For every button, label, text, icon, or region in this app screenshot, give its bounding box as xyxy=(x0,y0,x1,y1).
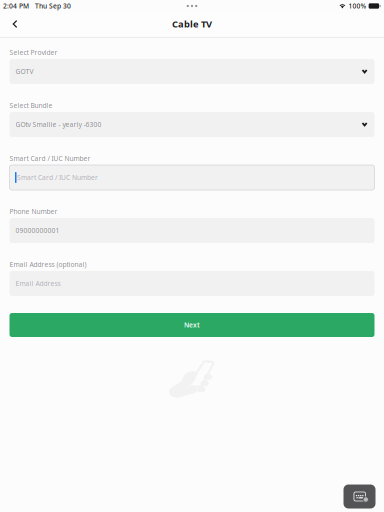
staticText: 100% xyxy=(348,2,366,10)
staticText: Cable TV xyxy=(172,18,212,30)
staticText: Smart Card / IUC Number xyxy=(17,173,98,182)
staticText: Email Address xyxy=(15,279,60,288)
staticText: GOTV xyxy=(15,67,33,76)
staticText: Select Bundle xyxy=(9,101,52,110)
staticText: 2:04 PM xyxy=(3,2,29,10)
button[interactable]: GOTV xyxy=(9,59,374,84)
button[interactable]: Next xyxy=(9,313,374,337)
staticText: Phone Number xyxy=(9,207,57,216)
button[interactable]: GOtv Smallie - yearly -6300 xyxy=(9,112,374,137)
staticText: Select Provider xyxy=(9,48,57,57)
button[interactable]: Hide keyboard xyxy=(343,484,375,508)
staticText: Smart Card / IUC Number xyxy=(9,154,90,163)
staticText: Thu Sep 30 xyxy=(35,2,71,10)
button[interactable]: Back xyxy=(8,16,22,32)
staticText: GOtv Smallie - yearly -6300 xyxy=(15,120,101,129)
staticText: Next xyxy=(184,321,200,329)
staticText: 09000000001 xyxy=(15,226,59,235)
staticText: Email Address (optional) xyxy=(9,260,86,269)
